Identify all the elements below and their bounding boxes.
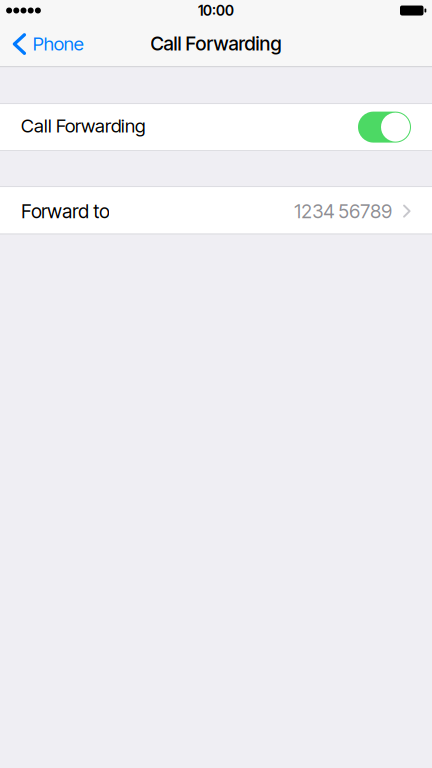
button[interactable]: Phone [0,22,96,66]
staticText: Phone [33,32,84,55]
staticText: Call Forwarding [21,114,146,137]
staticText: 10:00 [198,2,234,19]
button[interactable]: Forward to [0,187,432,233]
button[interactable]: Call Forwarding [0,104,432,150]
staticText: Call Forwarding [150,32,281,55]
staticText: 1234 56789 [294,200,392,223]
staticText: Forward to [21,200,109,223]
